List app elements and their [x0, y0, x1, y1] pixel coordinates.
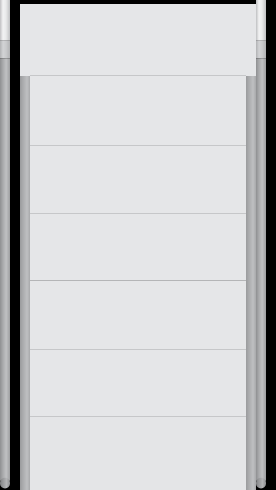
button[interactable]: Header: [20, 4, 256, 76]
button[interactable]: Item 5: [30, 350, 246, 417]
button[interactable]: Item 2: [30, 146, 246, 214]
button[interactable]: Item 1: [30, 76, 246, 146]
button[interactable]: Item 3: [30, 214, 246, 281]
button[interactable]: Item 4: [30, 281, 246, 350]
